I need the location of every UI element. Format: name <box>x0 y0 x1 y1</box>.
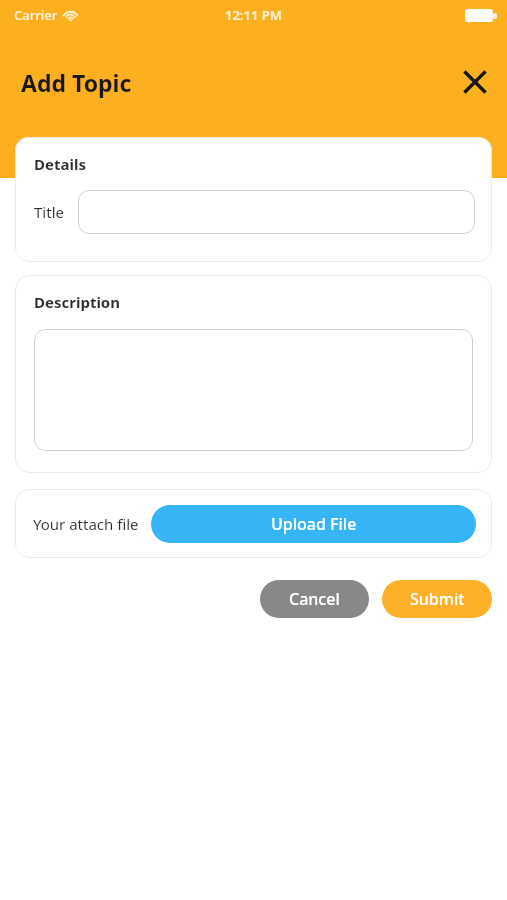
staticText: Description <box>34 292 120 312</box>
staticText: Upload File <box>271 513 357 535</box>
staticText: Cancel <box>289 588 340 610</box>
button[interactable]: Submit <box>382 580 492 618</box>
staticText: Carrier <box>14 6 58 24</box>
staticText: Submit <box>410 588 465 610</box>
staticText: Add Topic <box>21 67 132 98</box>
staticText: Title <box>34 202 64 222</box>
button[interactable] <box>78 190 475 234</box>
button[interactable]: Upload File <box>151 505 476 543</box>
staticText: 12:11 PM <box>225 6 282 24</box>
button[interactable] <box>34 329 473 451</box>
staticText: Details <box>34 154 86 174</box>
staticText: Your attach file <box>33 514 139 534</box>
button[interactable]: Cancel <box>260 580 369 618</box>
button[interactable]: Close <box>454 61 496 103</box>
